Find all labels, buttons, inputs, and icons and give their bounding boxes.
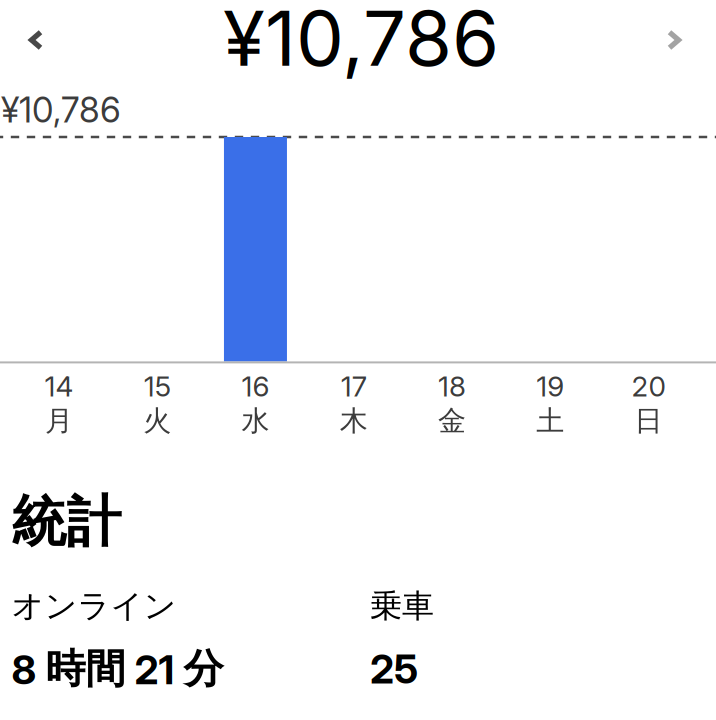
staticText: 水 — [241, 403, 269, 439]
staticText: 20 — [631, 369, 665, 403]
staticText: ¥10,786 — [1, 89, 121, 131]
button[interactable]: 19 — [501, 372, 599, 436]
button[interactable]: 16 — [206, 372, 304, 436]
staticText: 木 — [340, 403, 368, 439]
staticText: 8 時間 21 分 — [11, 644, 223, 694]
staticText: 月 — [45, 403, 73, 439]
staticText: 16 — [241, 369, 269, 403]
staticText: 統計 — [11, 488, 121, 556]
staticText: 17 — [341, 369, 367, 403]
staticText: 25 — [370, 645, 418, 693]
staticText: 火 — [143, 403, 171, 439]
button[interactable]: 18 — [403, 372, 501, 436]
staticText: 乗車 — [370, 586, 434, 626]
staticText: 日 — [634, 403, 662, 439]
staticText: オンライン — [11, 586, 176, 626]
staticText: ¥10,786 — [223, 0, 499, 84]
button[interactable]: 15 — [108, 372, 206, 436]
staticText: 15 — [144, 369, 171, 403]
staticText: 14 — [44, 369, 73, 403]
button[interactable]: Previous week — [2, 3, 70, 77]
staticText: 土 — [536, 403, 564, 439]
button[interactable]: 17 — [305, 372, 403, 436]
button[interactable]: Next week — [640, 3, 708, 77]
staticText: 金 — [438, 403, 466, 439]
staticText: 18 — [438, 369, 466, 403]
button[interactable]: 14 — [10, 372, 108, 436]
staticText: 19 — [536, 369, 564, 403]
button[interactable]: 20 — [599, 372, 697, 436]
